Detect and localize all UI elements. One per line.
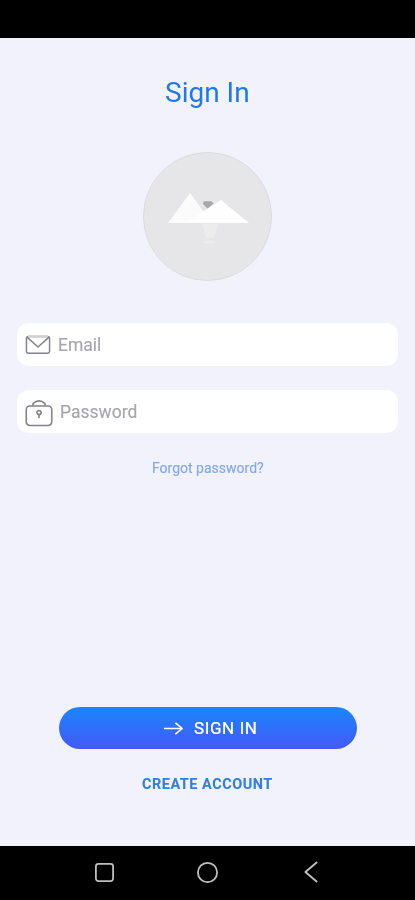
staticText: Email — [58, 335, 102, 356]
staticText: CREATE ACCOUNT — [142, 776, 273, 793]
button[interactable]: Home — [185, 850, 229, 894]
button[interactable]: SIGN IN — [59, 707, 357, 749]
button[interactable]: CREATE ACCOUNT — [132, 771, 283, 798]
button[interactable]: Forgot password? — [144, 456, 272, 480]
staticText: Sign In — [165, 76, 250, 109]
button[interactable]: Email — [17, 323, 398, 366]
button[interactable]: Recent apps — [82, 850, 126, 894]
staticText: Password — [60, 402, 138, 423]
button[interactable]: Password — [17, 390, 398, 433]
staticText: SIGN IN — [194, 718, 258, 738]
staticText: Forgot password? — [152, 460, 264, 476]
button[interactable]: Back — [289, 850, 333, 894]
